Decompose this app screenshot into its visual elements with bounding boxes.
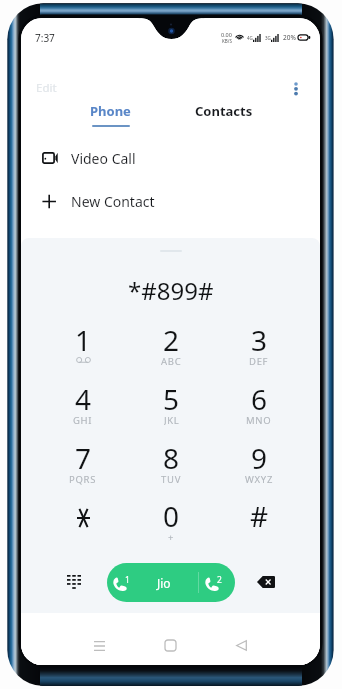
button[interactable]: Home xyxy=(149,624,192,665)
staticText: 4G xyxy=(247,35,253,41)
button[interactable]: Edit xyxy=(21,76,67,100)
button[interactable]: 0 xyxy=(127,497,215,547)
button[interactable]: 4 xyxy=(39,380,127,430)
staticText: GHI xyxy=(73,414,93,426)
staticText: 2 xyxy=(163,321,180,359)
button[interactable]: More options xyxy=(286,78,306,98)
staticText: Edit xyxy=(36,80,57,96)
staticText: DEF xyxy=(249,355,269,367)
staticText: 7 xyxy=(75,439,92,477)
staticText: Phone xyxy=(90,102,131,120)
staticText: 0.00 xyxy=(221,31,232,38)
staticText: 1 xyxy=(125,574,130,586)
button[interactable]: Backspace xyxy=(253,569,279,595)
button[interactable]: Contacts xyxy=(167,100,280,144)
button[interactable]: 9 xyxy=(215,439,303,489)
staticText: 8 xyxy=(163,439,180,477)
staticText: 3 xyxy=(251,321,268,359)
button[interactable]: 8 xyxy=(127,439,215,489)
staticText: 9 xyxy=(251,439,268,477)
staticText: JKL xyxy=(164,414,180,426)
button[interactable]: Video Call xyxy=(21,138,320,178)
button[interactable]: New Contact xyxy=(21,181,320,221)
staticText: 20% xyxy=(283,33,296,42)
staticText: # xyxy=(250,497,269,535)
staticText: PQRS xyxy=(69,473,97,485)
button[interactable]: 2 xyxy=(127,321,215,371)
button[interactable]: 1 xyxy=(39,321,127,371)
staticText: 4 xyxy=(75,380,92,418)
button[interactable]: # xyxy=(215,497,303,547)
staticText: 2 xyxy=(217,574,222,586)
staticText: 0 xyxy=(163,497,180,535)
staticText: 5 xyxy=(163,380,180,418)
staticText: Video Call xyxy=(71,149,136,168)
button[interactable]: 7 xyxy=(39,439,127,489)
staticText: TUV xyxy=(161,473,182,485)
staticText: *#899# xyxy=(128,274,214,307)
staticText: MNO xyxy=(246,414,272,426)
staticText: ABC xyxy=(161,355,182,367)
button[interactable] xyxy=(39,497,127,547)
button[interactable]: Recent apps xyxy=(78,624,121,665)
button[interactable]: 6 xyxy=(215,380,303,430)
staticText: Jio xyxy=(157,575,171,591)
button[interactable]: Back xyxy=(220,624,263,665)
button[interactable]: 5 xyxy=(127,380,215,430)
button[interactable]: Keypad xyxy=(61,569,87,595)
staticText: 7:37 xyxy=(35,31,55,45)
staticText: KB/S xyxy=(222,38,232,44)
staticText: + xyxy=(168,531,175,543)
staticText: 3G xyxy=(265,35,271,41)
staticText: Contacts xyxy=(195,102,253,120)
button[interactable]: 3 xyxy=(215,321,303,371)
staticText: New Contact xyxy=(71,192,155,211)
button[interactable]: Phone xyxy=(54,100,167,144)
staticText: 6 xyxy=(251,380,268,418)
staticText: 1 xyxy=(75,321,92,359)
button[interactable]: 1 xyxy=(107,563,235,602)
staticText: WXYZ xyxy=(245,473,274,485)
